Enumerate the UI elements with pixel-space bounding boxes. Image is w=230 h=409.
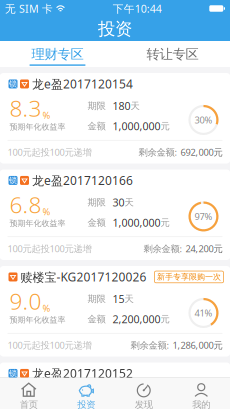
staticText: 投资 [77,399,95,409]
staticText: 天 [124,197,133,208]
staticText: 元 [160,217,169,228]
staticText: 龙e盈2017120166 [32,172,133,188]
button[interactable]: 赎楼宝-KG2017120026 [0,266,230,356]
staticText: 692,000元 [180,146,222,158]
staticText: 锁 [9,79,17,89]
staticText: 剩余金额: [143,242,182,255]
staticText: 期限 [87,100,105,112]
staticText: 1,000,000 [112,119,160,133]
staticText: 预期年化收益率 [9,218,65,228]
staticText: 7.5 [9,382,41,409]
staticText: 100元起投100元递增 [7,242,91,255]
button[interactable]: 我的 [172,378,230,409]
staticText: 6.8 [9,189,41,219]
staticText: 60% [194,403,212,409]
staticText: 1,286,000元 [172,339,222,351]
staticText: 15 [112,292,124,306]
staticText: 2,200,000 [112,312,160,326]
button[interactable]: 投资 [57,378,115,409]
staticText: 剩余金额: [130,339,169,351]
button[interactable]: 理财专区 [0,41,115,67]
staticText: 30 [112,195,124,210]
button[interactable]: 锁 [0,73,230,163]
staticText: 期限 [87,390,105,401]
staticText: 期限 [87,293,105,305]
staticText: 金额 [87,120,105,132]
staticText: 剩余金额: [138,146,177,158]
staticText: 30% [194,114,212,126]
button[interactable]: 锁 [0,362,230,409]
staticText: 预期年化收益率 [9,315,65,325]
staticText: 锁 [9,175,17,185]
staticText: 天 [124,293,133,305]
staticText: 赎楼宝-KG2017120026 [20,269,146,285]
staticText: 41% [194,307,212,319]
staticText: 100元起投100元递增 [7,339,91,351]
staticText: 新手专享限购一次 [157,272,221,282]
staticText: 金额 [87,313,105,325]
button[interactable]: 首页 [0,378,57,409]
staticText: 100元起投100元递增 [7,146,91,158]
staticText: 发现 [135,399,153,409]
staticText: 我的 [192,399,210,409]
staticText: 金额 [87,217,105,228]
staticText: % [42,109,50,121]
staticText: 龙e盈2017120154 [32,76,133,92]
staticText: 锁 [9,368,17,378]
staticText: 投资 [98,18,132,40]
staticText: 元 [160,120,169,132]
staticText: 24,200元 [185,242,222,255]
button[interactable]: 发现 [115,378,172,409]
staticText: % [42,206,50,218]
button[interactable]: 转让专区 [115,41,230,67]
staticText: 元 [160,313,169,325]
staticText: % [42,302,50,314]
staticText: 8.3 [9,93,41,123]
staticText: 9.0 [9,286,41,316]
button[interactable]: 锁 [0,169,230,260]
staticText: 无 SIM 卡 [5,1,53,16]
staticText: 理财专区 [31,46,83,62]
staticText: 龙e盈2017120152 [32,365,133,381]
staticText: 预期年化收益率 [9,122,65,132]
staticText: 转让专区 [146,46,198,62]
staticText: 1,500,000 [112,408,160,409]
staticText: 下午10:44 [113,1,162,16]
staticText: 首页 [20,399,38,409]
staticText: 天 [130,100,139,112]
staticText: 期限 [87,197,105,208]
staticText: 180 [112,99,130,113]
staticText: 1,000,000 [112,215,160,230]
staticText: 97% [194,210,212,223]
